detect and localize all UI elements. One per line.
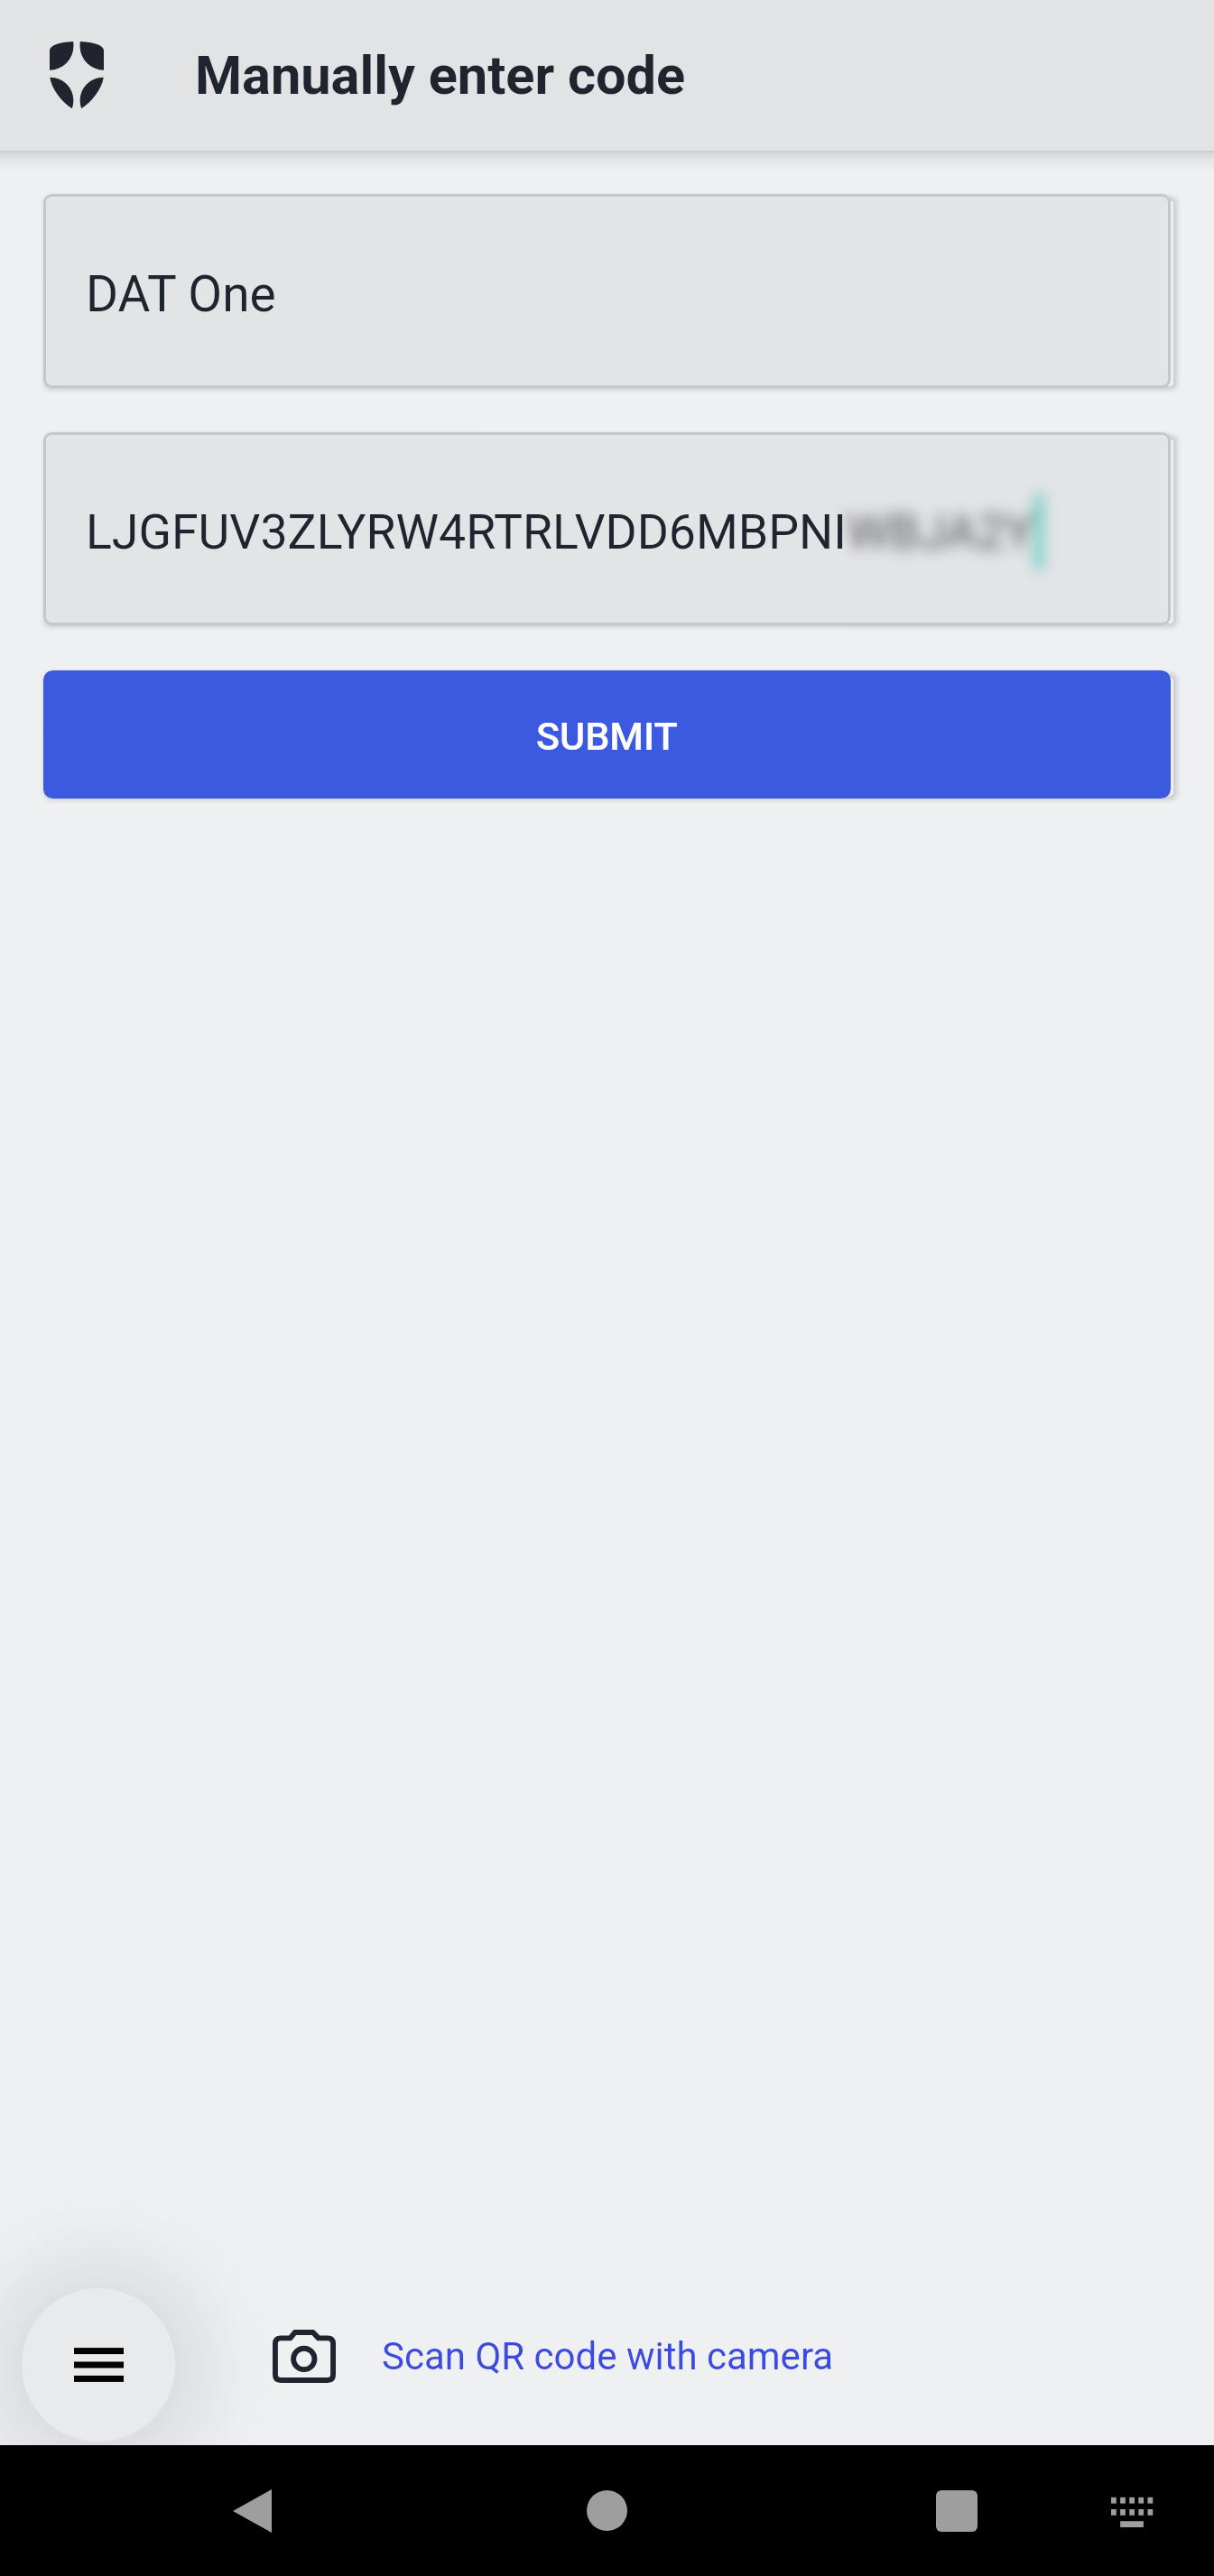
- button[interactable]: Scan QR code with camera: [273, 2330, 834, 2383]
- button[interactable]: Home: [587, 2490, 627, 2531]
- staticText: SUBMIT: [536, 714, 678, 759]
- button[interactable]: Open menu: [22, 2288, 175, 2442]
- button[interactable]: SUBMIT: [43, 670, 1171, 799]
- staticText: WBJA2Y: [847, 503, 1034, 560]
- staticText: DAT One: [86, 265, 276, 323]
- staticText: Manually enter code: [195, 44, 686, 107]
- button[interactable]: Back: [233, 2489, 272, 2533]
- staticText: Scan QR code with camera: [382, 2334, 834, 2378]
- button[interactable]: LJGFUV3ZLYRW4RTRLVDD6MBPNI: [43, 432, 1171, 625]
- button[interactable]: Switch keyboard: [1111, 2493, 1153, 2529]
- button[interactable]: Recent apps: [936, 2490, 978, 2532]
- button[interactable]: DAT One: [43, 194, 1171, 388]
- staticText: LJGFUV3ZLYRW4RTRLVDD6MBPNI: [86, 503, 847, 560]
- button[interactable]: Bitwarden: [18, 17, 135, 134]
